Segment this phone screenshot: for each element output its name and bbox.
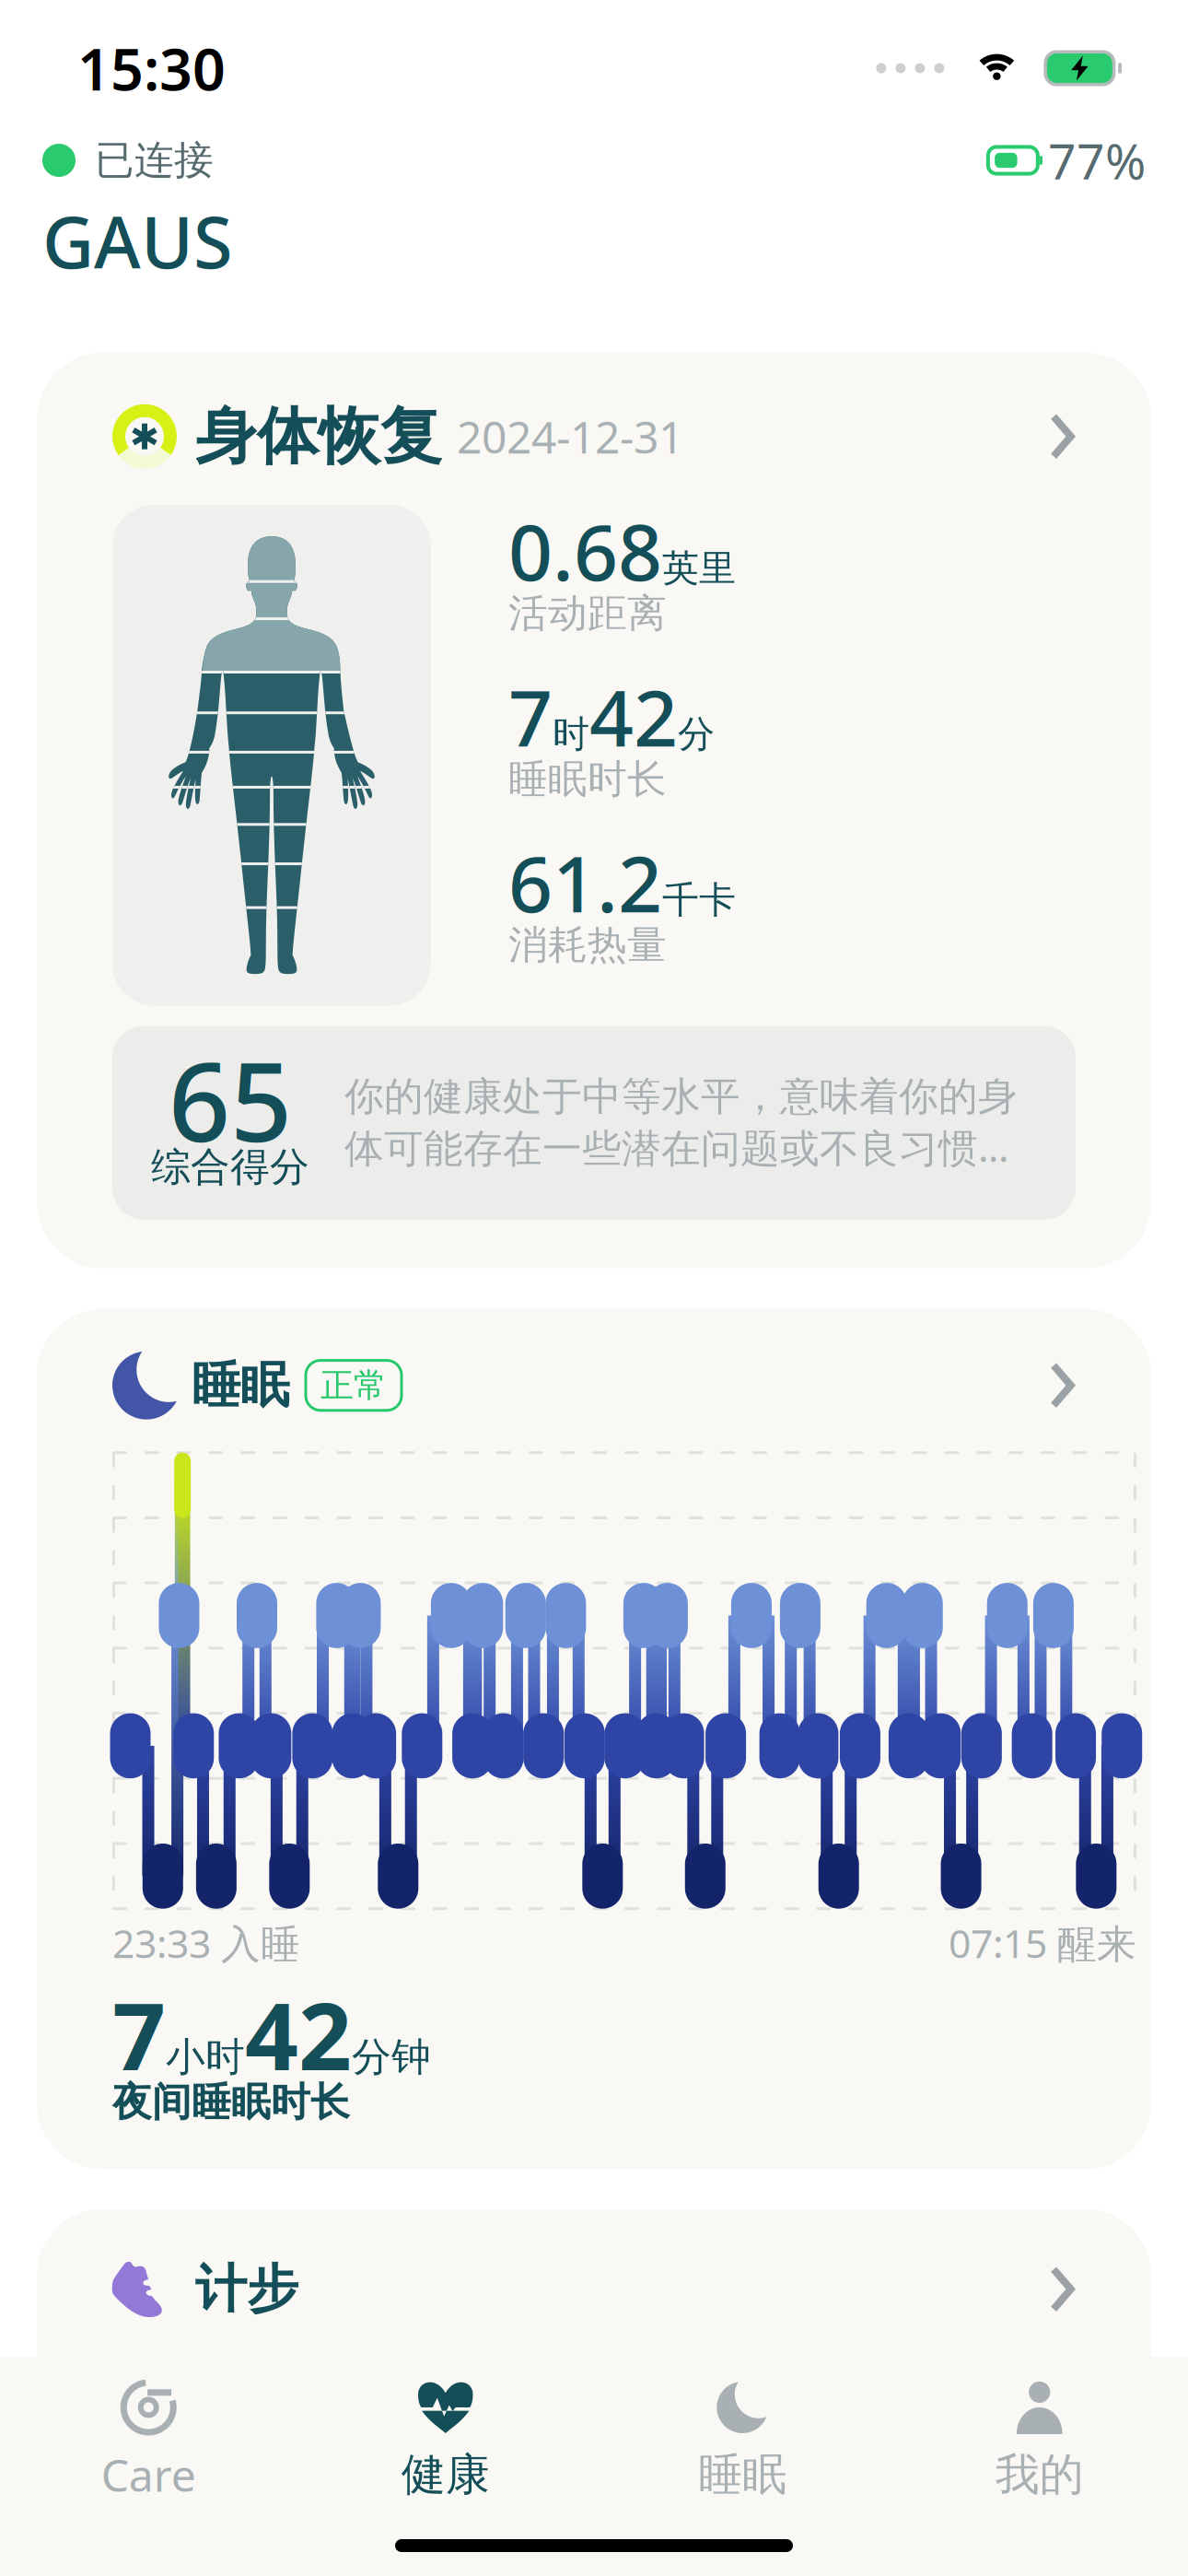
button[interactable]: 健康 (297, 2379, 594, 2499)
staticText: 7 (112, 1972, 166, 2096)
button[interactable]: 我的 (891, 2379, 1188, 2499)
staticText: 活动距离 (508, 589, 667, 637)
staticText: 77% (1048, 128, 1146, 193)
staticText: 7 (508, 665, 553, 768)
button[interactable]: 计步 (37, 2209, 1151, 2576)
staticText: 时 (553, 712, 589, 757)
staticText: 消耗热量 (508, 921, 667, 969)
staticText: 小时 (166, 2033, 245, 2081)
staticText: 你的健康处于中等水平，意味着你的身体可能存在一些潜在问题或不良习惯。虽… (344, 1073, 1037, 1173)
staticText: 我的 (995, 2447, 1084, 2502)
staticText: 睡眠时长 (508, 755, 667, 803)
staticText: 健康 (401, 2447, 490, 2502)
staticText: 0.68 (508, 499, 662, 602)
button[interactable]: 睡眠 (37, 1309, 1151, 2169)
staticText: 已连接 (95, 136, 214, 184)
staticText: 分钟 (352, 2033, 431, 2081)
staticText: 07:15 醒来 (949, 1917, 1136, 1969)
staticText: 英里 (662, 546, 736, 591)
staticText: 2024-12-31 (457, 407, 683, 466)
staticText: 综合得分 (151, 1143, 309, 1191)
staticText: 身体恢复 (195, 399, 442, 474)
button[interactable]: 睡眠 (594, 2379, 891, 2499)
button[interactable]: 身体恢复 (37, 353, 1151, 1268)
staticText: GAUS (42, 193, 233, 288)
staticText: Care (101, 2445, 196, 2504)
staticText: 睡眠 (192, 1355, 289, 1416)
staticText: 42 (245, 1972, 352, 2096)
staticText: 夜间睡眠时长 (112, 2078, 350, 2126)
staticText: 23:33 入睡 (112, 1917, 300, 1969)
staticText: 42 (589, 665, 678, 768)
button[interactable]: Care (0, 2379, 297, 2499)
staticText: 分 (678, 712, 715, 757)
staticText: 65 (169, 1028, 292, 1172)
staticText: 15:30 (77, 30, 226, 107)
staticText: 正常 (320, 1365, 387, 1406)
staticText: 61.2 (508, 831, 662, 934)
staticText: 千卡 (662, 877, 736, 923)
staticText: 计步 (195, 2258, 298, 2321)
staticText: 睡眠 (698, 2447, 787, 2502)
